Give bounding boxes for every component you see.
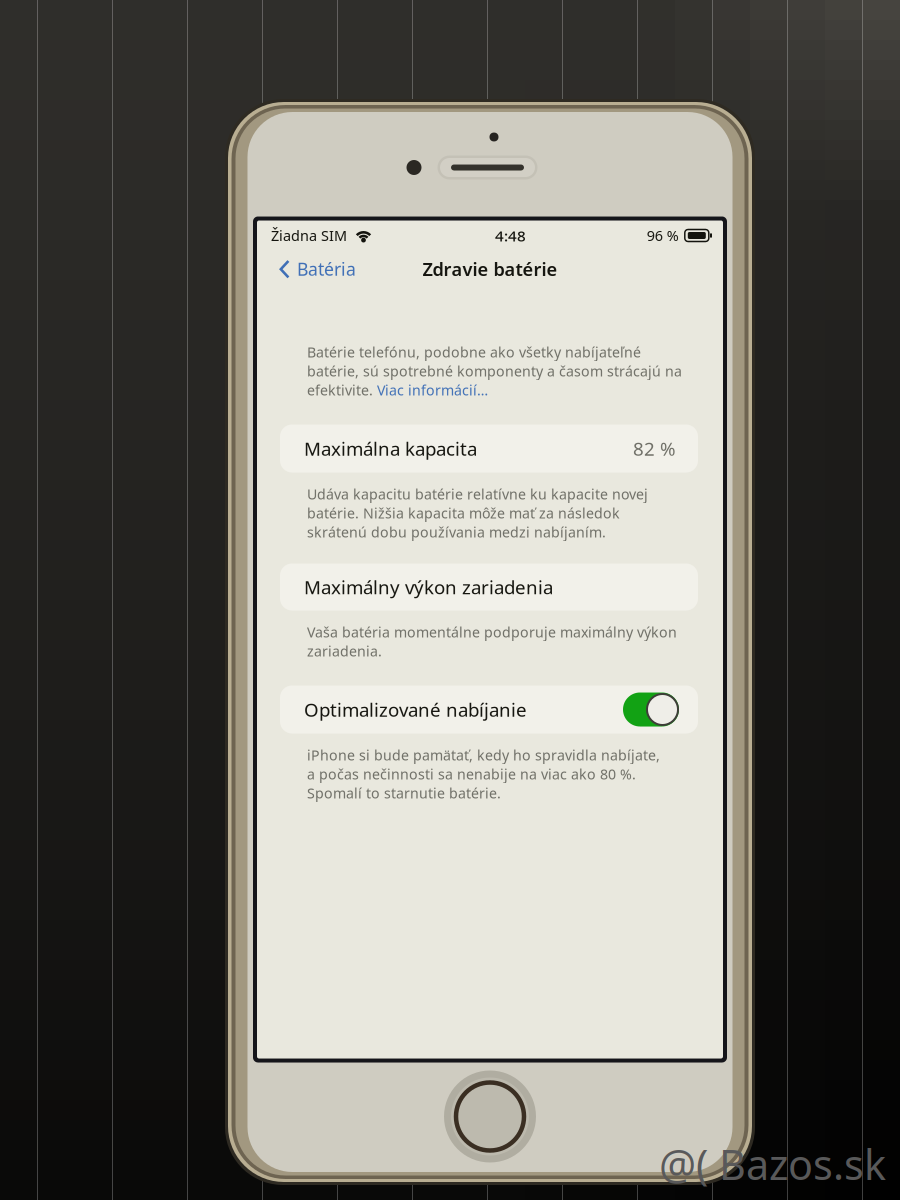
button[interactable]: Optimalizované nabíjanie — [280, 685, 698, 733]
staticText: iPhone si bude pamätať, kedy ho spravidl… — [307, 745, 660, 765]
staticText: efektivite. — [307, 380, 377, 400]
staticText: Spomalí to starnutie batérie. — [307, 783, 501, 803]
staticText: Optimalizované nabíjanie — [304, 697, 527, 722]
staticText: zariadenia. — [307, 641, 382, 661]
staticText: Batérie telefónu, podobne ako všetky nab… — [307, 342, 641, 362]
staticText: 4:48 — [495, 225, 526, 246]
staticText: 82 % — [633, 436, 676, 461]
staticText: a počas nečinnosti sa nenabije na viac a… — [307, 764, 636, 784]
staticText: batérie, sú spotrebné komponenty a časom… — [307, 361, 682, 381]
staticText: Viac informácií… — [377, 380, 488, 400]
staticText: 96 % — [647, 226, 679, 245]
staticText: Udáva kapacitu batérie relatívne ku kapa… — [307, 484, 648, 504]
staticText: Maximálny výkon zariadenia — [304, 574, 553, 600]
staticText: Maximálna kapacita — [304, 436, 477, 461]
staticText: skrátenú dobu používania medzi nabíjaním… — [307, 522, 606, 542]
staticText: Vaša batéria momentálne podporuje maximá… — [307, 622, 677, 642]
staticText: Žiadna SIM — [271, 226, 347, 245]
staticText: batérie. Nižšia kapacita môže mať za nás… — [307, 503, 620, 523]
button[interactable]: Batéria — [257, 251, 368, 287]
staticText: Batéria — [297, 257, 356, 281]
staticText: @( Bazos.sk — [659, 1136, 886, 1192]
staticText: Zdravie batérie — [422, 257, 557, 281]
